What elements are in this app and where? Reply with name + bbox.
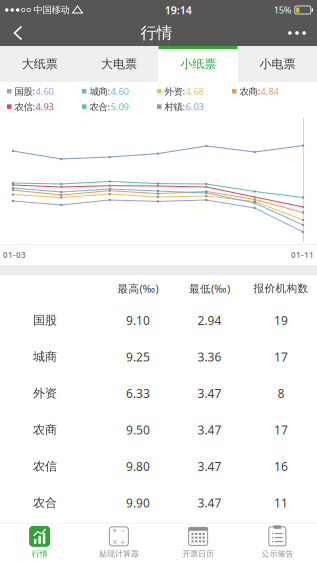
- button[interactable]: 公示催告: [238, 523, 317, 561]
- staticText: 17: [274, 349, 288, 365]
- staticText: −: [120, 525, 125, 536]
- staticText: 公示催告: [261, 549, 293, 559]
- staticText: 农信: [33, 459, 57, 474]
- button[interactable]: 大纸票: [0, 46, 79, 82]
- staticText: 9.25: [126, 349, 150, 365]
- staticText: 9.90: [126, 495, 150, 511]
- staticText: 9.10: [126, 312, 150, 328]
- staticText: 11: [274, 495, 288, 511]
- staticText: 01-11: [291, 250, 314, 260]
- staticText: 报价机构数: [253, 282, 308, 295]
- staticText: 城商: [33, 349, 57, 364]
- staticText: 农合: [33, 495, 57, 510]
- staticText: 19: [274, 312, 288, 328]
- staticText: 01-03: [3, 250, 26, 260]
- staticText: 外资:: [164, 85, 185, 97]
- staticText: 3.47: [197, 422, 221, 438]
- staticText: 3.47: [197, 458, 221, 474]
- staticText: 3.47: [197, 495, 221, 511]
- staticText: 开票日历: [182, 549, 214, 559]
- staticText: +: [112, 525, 117, 536]
- staticText: 大电票: [101, 57, 137, 71]
- staticText: 2.94: [197, 312, 221, 328]
- staticText: ×: [112, 537, 117, 547]
- staticText: 小电票: [259, 57, 295, 71]
- button[interactable]: More options: [277, 20, 317, 46]
- staticText: 农信:: [14, 100, 35, 113]
- staticText: 国股:: [14, 85, 35, 97]
- staticText: 贴现计算器: [99, 549, 139, 559]
- button[interactable]: 行情: [0, 523, 79, 561]
- button[interactable]: +: [79, 523, 158, 561]
- staticText: 6.03: [185, 100, 203, 113]
- staticText: 4.84: [260, 85, 278, 97]
- staticText: 村镇:: [164, 100, 185, 113]
- staticText: 外资: [33, 386, 57, 401]
- staticText: 城商:: [89, 85, 110, 97]
- staticText: 3.47: [197, 385, 221, 401]
- staticText: 行情: [140, 23, 172, 43]
- button[interactable]: 开票日历: [158, 523, 238, 561]
- staticText: 农合:: [89, 100, 110, 113]
- staticText: ÷: [120, 537, 125, 547]
- staticText: 农商:: [239, 85, 260, 97]
- staticText: 15%: [274, 4, 292, 16]
- staticText: 小纸票: [180, 57, 216, 71]
- staticText: 5.09: [110, 100, 128, 113]
- staticText: 8: [277, 385, 284, 401]
- staticText: 最低(‰): [189, 281, 230, 296]
- button[interactable]: Back: [0, 20, 36, 46]
- staticText: 最高(‰): [117, 281, 158, 296]
- staticText: 行情: [32, 549, 48, 559]
- staticText: 4.60: [110, 85, 128, 97]
- staticText: 17: [274, 422, 288, 438]
- button[interactable]: 小纸票: [158, 46, 238, 82]
- button[interactable]: 小电票: [238, 46, 317, 82]
- staticText: 国股: [33, 313, 57, 328]
- staticText: 农商: [33, 422, 57, 437]
- staticText: 9.80: [126, 458, 150, 474]
- staticText: 大纸票: [22, 57, 58, 71]
- button[interactable]: 大电票: [79, 46, 158, 82]
- staticText: 中国移动: [33, 4, 69, 16]
- staticText: 3.36: [197, 349, 221, 365]
- staticText: 4.93: [35, 100, 53, 113]
- staticText: 4.60: [35, 85, 53, 97]
- staticText: 4.68: [185, 85, 203, 97]
- staticText: 19:14: [165, 3, 192, 17]
- staticText: 16: [274, 458, 288, 474]
- staticText: 9.50: [126, 422, 150, 438]
- staticText: 6.33: [126, 385, 150, 401]
